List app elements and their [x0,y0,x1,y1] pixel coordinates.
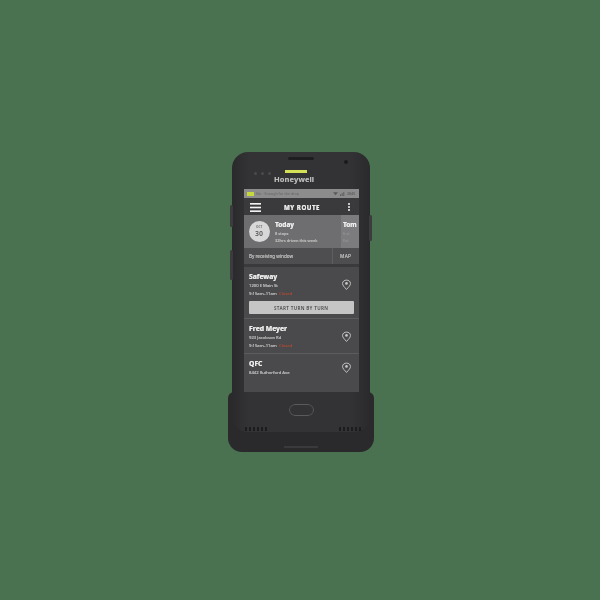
staticText: 32hrs driven this week [275,238,318,243]
staticText: 9:15am–11am [249,343,277,349]
button[interactable]: Fred Meyer [244,319,359,353]
staticText: 30 [255,229,264,239]
staticText: Est [343,238,349,243]
staticText: Closed [279,343,293,349]
staticText: 2845 [347,191,356,196]
staticText: 1200 E Main St [249,283,278,289]
button[interactable]: MAP [333,248,359,264]
staticText: QFC [249,359,263,368]
staticText: By receiving window [249,253,294,259]
button[interactable]: Home [289,404,314,416]
staticText: 8442 Rutherford Ave [249,370,290,376]
staticText: 6 st [343,231,350,236]
staticText: Fred Meyer [249,324,288,333]
staticText: Tom [343,220,357,229]
staticText: MAP [340,253,352,260]
staticText: Closed [279,291,293,297]
button[interactable]: Menu [248,200,262,214]
staticText: Safeway [249,272,278,281]
staticText: Honeywell [274,174,315,184]
staticText: OCT [256,225,263,229]
button[interactable]: START TURN BY TURN [249,301,354,314]
staticText: 9:15am–11am [249,291,277,297]
button[interactable]: Navigate to Safeway [339,277,354,292]
button[interactable]: QFC [244,354,359,380]
button[interactable]: Navigate to Fred Meyer [339,329,354,344]
staticText: 8 stops [275,231,289,236]
button[interactable]: Safeway [244,267,359,318]
button[interactable]: Navigate to QFC [339,360,354,375]
staticText: MY ROUTE [284,203,320,211]
button[interactable]: OCT [244,215,341,248]
staticText: START TURN BY TURN [274,305,329,311]
staticText: Today [275,220,295,229]
button[interactable]: By receiving window [244,248,332,264]
button[interactable]: Tom [341,215,359,248]
staticText: 6hr · Enough for the drop [256,191,299,196]
button[interactable]: More options [342,200,356,214]
staticText: 923 Jacobson Rd [249,335,282,341]
